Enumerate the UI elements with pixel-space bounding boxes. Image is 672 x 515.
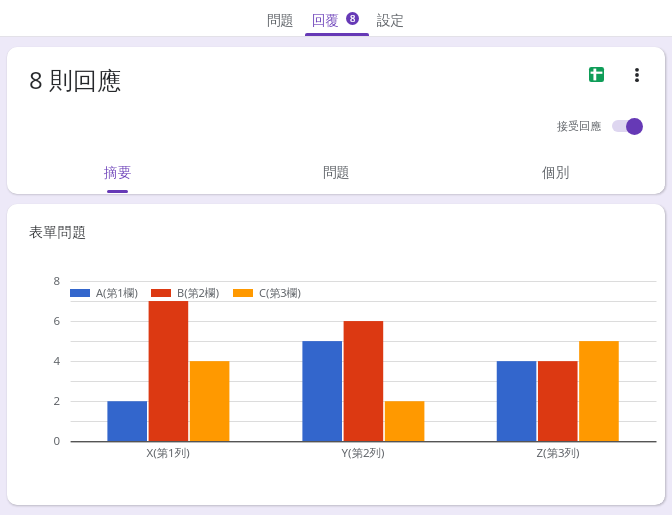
staticText: 問題: [323, 164, 350, 181]
button[interactable]: 接受回應: [557, 117, 645, 135]
button[interactable]: 回覆: [305, 0, 369, 36]
button[interactable]: More options: [622, 60, 652, 90]
button[interactable]: 問題: [227, 148, 446, 194]
staticText: 接受回應: [557, 119, 601, 133]
button[interactable]: 問題: [256, 0, 305, 36]
staticText: 8: [350, 12, 356, 25]
staticText: C(第3欄): [259, 285, 301, 300]
staticText: 表單問題: [29, 223, 87, 241]
staticText: 8 則回應: [29, 63, 121, 96]
staticText: 4: [40, 353, 60, 369]
button[interactable]: 摘要: [7, 148, 227, 194]
staticText: B(第2欄): [177, 285, 220, 300]
staticText: Y(第2列): [313, 445, 413, 461]
staticText: A(第1欄): [96, 285, 138, 300]
staticText: X(第1列): [118, 445, 218, 461]
button[interactable]: Open responses in Sheets: [581, 59, 611, 89]
staticText: 回覆: [312, 12, 339, 29]
button[interactable]: 個別: [446, 148, 665, 194]
staticText: 設定: [377, 12, 404, 29]
staticText: 8: [40, 273, 60, 289]
staticText: 問題: [267, 12, 294, 29]
staticText: 0: [40, 433, 60, 449]
staticText: 6: [40, 313, 60, 329]
staticText: Z(第3列): [508, 445, 608, 461]
button[interactable]: 設定: [366, 0, 415, 36]
staticText: 個別: [542, 164, 569, 181]
staticText: 2: [40, 393, 60, 409]
staticText: 摘要: [104, 164, 131, 181]
